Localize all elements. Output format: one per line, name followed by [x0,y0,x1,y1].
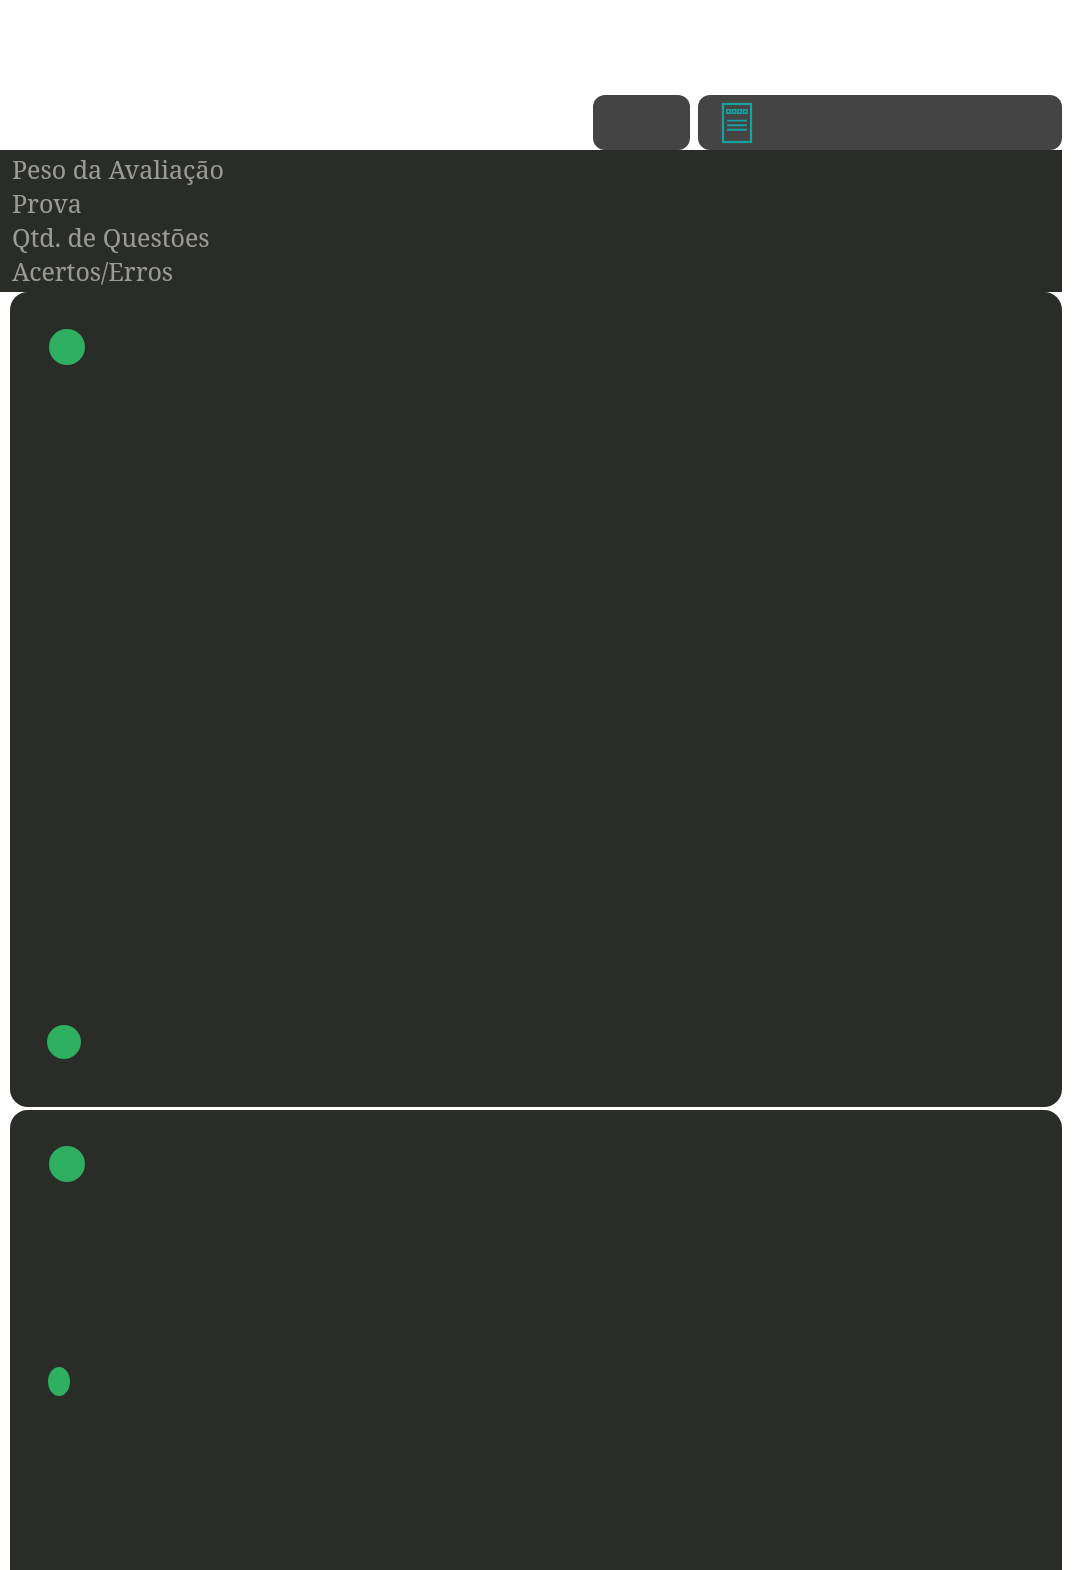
staticText: Peso da Avaliação [12,152,224,186]
button[interactable] [10,1110,1062,1570]
button[interactable] [10,292,1062,1107]
staticText: Prova [12,186,82,220]
button[interactable]: Avaliações [698,95,1062,150]
staticText: Acertos/Erros [12,254,174,288]
staticText: Nota [12,288,69,294]
staticText: Qtd. de Questões [12,220,210,254]
button[interactable]: Tab [593,95,690,150]
